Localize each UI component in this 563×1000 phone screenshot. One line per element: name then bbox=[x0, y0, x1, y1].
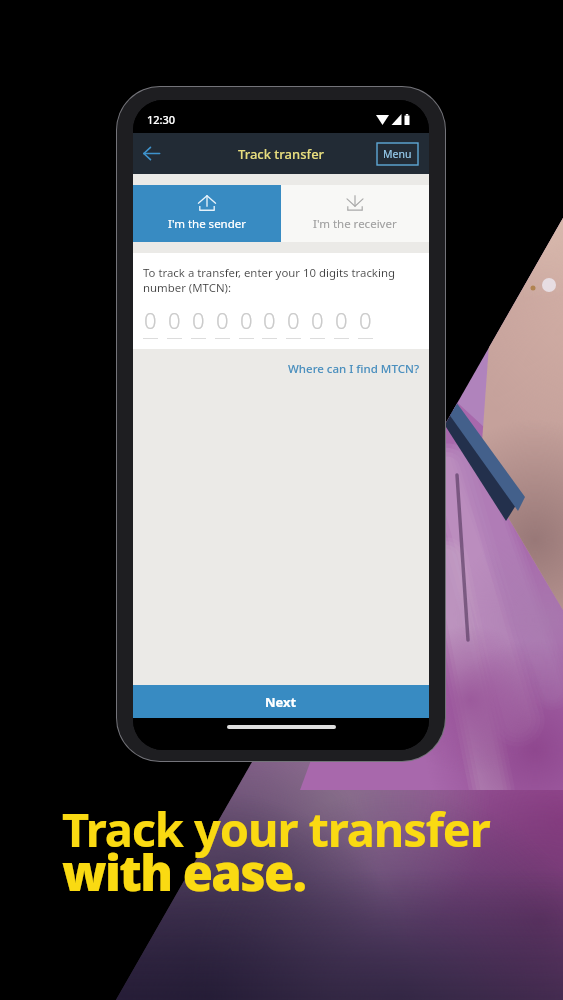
button[interactable]: Back bbox=[133, 133, 169, 174]
button[interactable]: I'm the receiver bbox=[281, 185, 429, 242]
staticText: 0 bbox=[287, 305, 300, 335]
staticText: 0 bbox=[144, 305, 157, 335]
staticText: Track transfer bbox=[238, 145, 325, 163]
staticText: 0 bbox=[192, 305, 205, 335]
staticText: 0 bbox=[240, 305, 253, 335]
button[interactable]: Where can I find MTCN? bbox=[288, 349, 429, 377]
staticText: Menu bbox=[383, 147, 412, 161]
staticText: 0 bbox=[263, 305, 276, 335]
staticText: 12:30 bbox=[147, 112, 176, 127]
staticText: with ease. bbox=[62, 839, 306, 906]
staticText: Next bbox=[265, 693, 297, 711]
staticText: 0 bbox=[168, 305, 181, 335]
staticText: 0 bbox=[311, 305, 324, 335]
staticText: 0 bbox=[359, 305, 372, 335]
staticText: 0 bbox=[335, 305, 348, 335]
button[interactable]: I'm the sender bbox=[133, 185, 281, 242]
staticText: 0 bbox=[216, 305, 229, 335]
staticText: Track your transfer bbox=[62, 797, 490, 861]
staticText: I'm the receiver bbox=[313, 216, 397, 232]
staticText: To track a transfer, enter your 10 digit… bbox=[143, 265, 395, 295]
button[interactable]: Next bbox=[133, 685, 429, 718]
button[interactable]: Menu bbox=[377, 143, 418, 165]
staticText: I'm the sender bbox=[168, 216, 247, 232]
